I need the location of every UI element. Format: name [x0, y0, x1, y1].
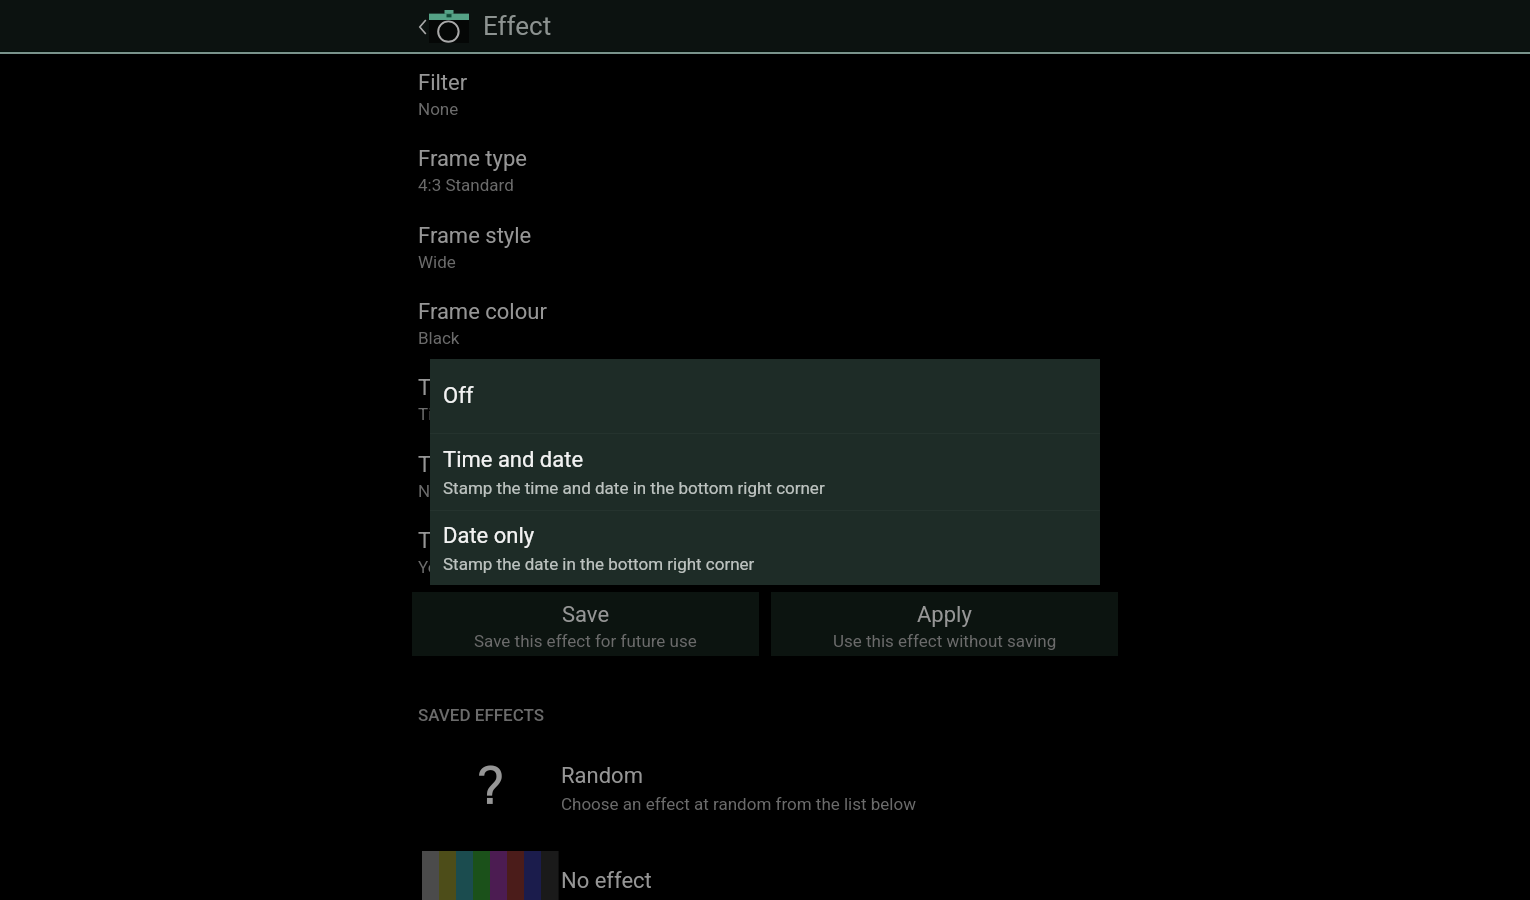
button[interactable]: Frame type	[418, 146, 1118, 222]
staticText: Effect	[483, 11, 552, 41]
button[interactable]: Frame colour	[418, 299, 1118, 375]
staticText: Time and date	[443, 447, 584, 473]
staticText: Save this effect for future use	[474, 631, 697, 651]
staticText: Choose an effect at random from the list…	[561, 794, 916, 814]
staticText: Timestamp	[418, 375, 530, 401]
staticText: Use this effect without saving	[833, 631, 1057, 651]
button[interactable]: Timestamp	[418, 375, 1118, 451]
staticText: Time and date	[418, 404, 527, 424]
staticText: Stamp the date in the bottom right corne…	[443, 554, 755, 574]
button[interactable]: Off	[430, 359, 1100, 433]
staticText: ?	[477, 754, 504, 821]
button[interactable]: Date only	[430, 511, 1100, 585]
staticText: 4:3 Standard	[418, 175, 514, 195]
button[interactable]: Title	[418, 452, 1118, 528]
staticText: Yellow	[418, 557, 468, 577]
button[interactable]: Navigate up	[416, 4, 472, 50]
staticText: Apply	[917, 602, 972, 628]
staticText: Frame colour	[418, 299, 547, 325]
button[interactable]: Save	[412, 592, 759, 656]
button[interactable]: No effect	[412, 838, 1118, 900]
staticText: Black	[418, 328, 460, 348]
staticText: No effect	[561, 868, 652, 894]
button[interactable]: Tint	[418, 528, 1118, 604]
button[interactable]: ?	[412, 746, 1118, 828]
staticText: Stamp the time and date in the bottom ri…	[443, 478, 825, 498]
button[interactable]: Filter	[418, 70, 1118, 146]
staticText: SAVED EFFECTS	[418, 705, 545, 725]
button[interactable]: Apply	[771, 592, 1118, 656]
staticText: Frame style	[418, 223, 532, 249]
staticText: Save	[562, 602, 610, 628]
staticText: Random	[561, 763, 643, 789]
staticText: Frame type	[418, 146, 527, 172]
staticText: Title	[418, 452, 461, 478]
staticText: Tint	[418, 528, 456, 554]
button[interactable]: Frame style	[418, 223, 1118, 299]
staticText: Wide	[418, 252, 456, 272]
staticText: None	[418, 99, 459, 119]
staticText: Filter	[418, 70, 468, 96]
staticText: Date only	[443, 523, 535, 549]
staticText: None	[418, 481, 459, 501]
button[interactable]: Time and date	[430, 434, 1100, 510]
staticText: Off	[443, 383, 474, 409]
